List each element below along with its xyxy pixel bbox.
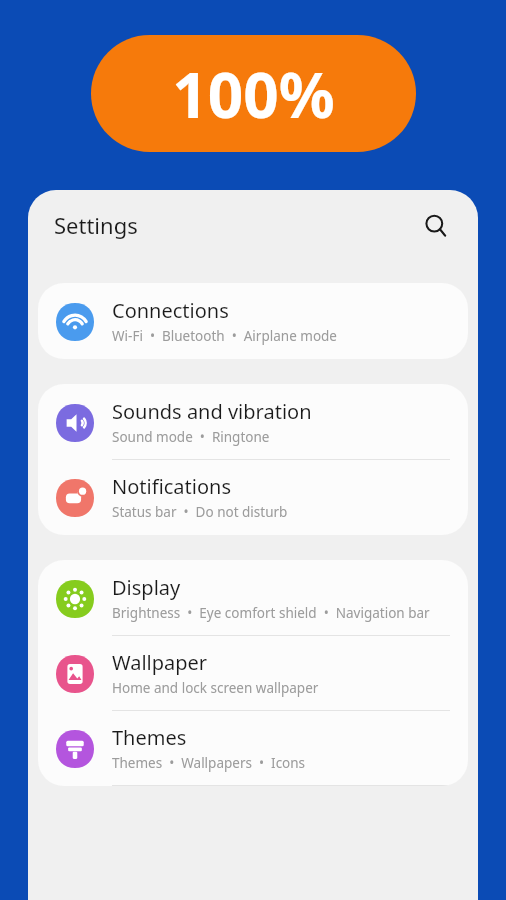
button[interactable]: Display [38, 560, 468, 635]
staticText: Status bar • Do not disturb [112, 503, 288, 521]
staticText: Sounds and vibration [112, 398, 312, 425]
button[interactable]: Wallpaper [38, 636, 468, 710]
staticText: Sound mode • Ringtone [112, 428, 270, 446]
button[interactable]: Sounds and vibration [38, 384, 468, 459]
staticText: Home and lock screen wallpaper [112, 679, 319, 697]
button[interactable]: Themes [38, 711, 468, 785]
button[interactable]: Notifications [38, 460, 468, 535]
staticText: Themes [112, 724, 187, 751]
staticText: Wallpaper [112, 649, 208, 676]
staticText: Notifications [112, 473, 231, 500]
staticText: Display [112, 574, 181, 601]
staticText: Themes • Wallpapers • Icons [112, 754, 306, 772]
staticText: Brightness • Eye comfort shield • Naviga… [112, 604, 430, 622]
staticText: Wi-Fi • Bluetooth • Airplane mode [112, 327, 337, 345]
staticText: Connections [112, 297, 229, 324]
button[interactable]: Connections [38, 283, 468, 359]
button[interactable]: Search [414, 204, 458, 248]
staticText: 100% [172, 52, 335, 136]
button[interactable]: 100% [91, 35, 416, 152]
staticText: Settings [54, 210, 138, 240]
